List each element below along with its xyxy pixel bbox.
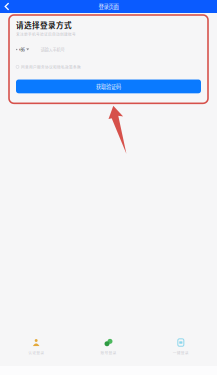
staticText: 未注册手机号验证后自动创建账号: [16, 31, 76, 37]
button[interactable]: 账号登录: [72, 336, 145, 361]
button[interactable]: Back: [0, 0, 13, 13]
button[interactable]: 获取验证码: [16, 79, 201, 93]
staticText: 账号登录: [100, 350, 116, 355]
staticText: 一键登录: [173, 350, 189, 355]
staticText: 同意用户服务协议和隐私政策条款: [21, 64, 81, 69]
button[interactable]: 一键登录: [145, 336, 217, 361]
staticText: 登录页面: [98, 3, 118, 10]
staticText: +86: [19, 46, 25, 53]
button[interactable]: 认证登录: [0, 336, 72, 361]
staticText: 请输入手机号: [40, 46, 64, 53]
staticText: 认证登录: [28, 350, 44, 355]
staticText: 获取验证码: [96, 83, 121, 90]
staticText: 请选择登录方式: [16, 19, 72, 30]
